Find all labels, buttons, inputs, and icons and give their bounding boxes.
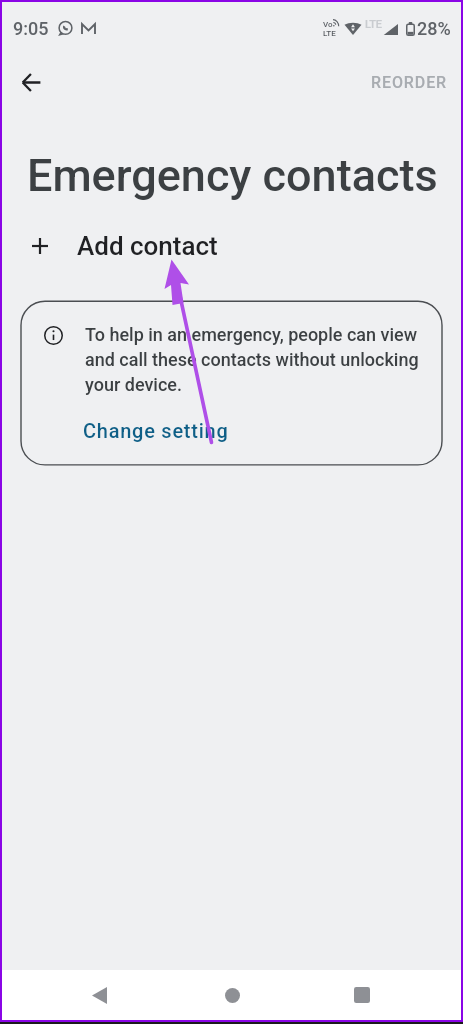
staticText: Add contact (77, 231, 218, 261)
button[interactable]: Recent apps (338, 971, 386, 1019)
staticText: Change setting (83, 419, 229, 442)
staticText: Vo (323, 20, 333, 29)
button[interactable]: Back (75, 971, 123, 1019)
staticText: Emergency contacts (27, 149, 438, 202)
button[interactable]: Add contact (0, 227, 463, 265)
button[interactable]: Change setting (83, 419, 229, 442)
staticText: 28% (417, 18, 451, 39)
staticText: REORDER (371, 73, 448, 92)
staticText: 9:05 (13, 18, 49, 39)
staticText: To help in an emergency, people can view… (85, 324, 431, 395)
staticText: LTE (365, 18, 382, 31)
button[interactable]: Home (208, 971, 256, 1019)
button[interactable]: Back (7, 58, 55, 106)
staticText: LTE (323, 29, 336, 38)
button[interactable]: REORDER (363, 65, 456, 100)
